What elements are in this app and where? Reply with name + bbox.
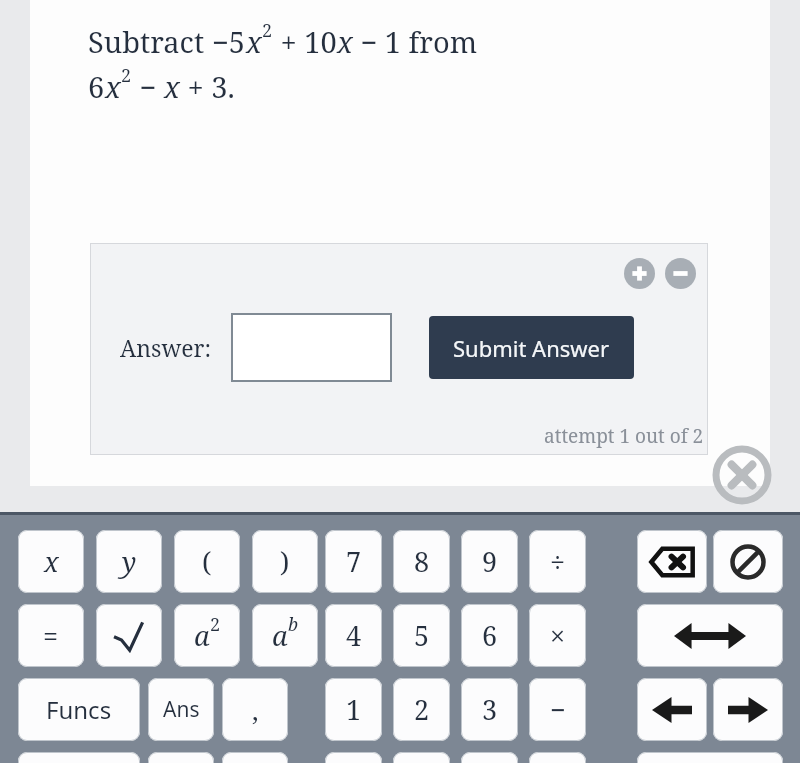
button[interactable]: × (529, 604, 586, 667)
staticText: 6 (88, 67, 105, 106)
button[interactable] (222, 752, 288, 763)
button[interactable]: ( (174, 530, 240, 593)
staticText: = (43, 617, 59, 654)
staticText: ( (202, 543, 212, 580)
staticText: − 1 from (353, 22, 478, 61)
staticText: 2 (210, 612, 221, 637)
button[interactable]: 3 (461, 678, 518, 741)
button[interactable]: Backspace (637, 530, 707, 593)
button[interactable]: 4 (325, 604, 382, 667)
staticText: + 10 (273, 22, 337, 61)
staticText: b (288, 612, 299, 637)
button[interactable] (461, 752, 518, 763)
button[interactable]: a (252, 604, 318, 667)
button[interactable]: 7 (325, 530, 382, 593)
button[interactable]: 9 (461, 530, 518, 593)
staticText: 2 (262, 18, 273, 43)
button[interactable] (231, 313, 392, 382)
staticText: x (337, 22, 353, 61)
button[interactable]: Funcs (18, 678, 140, 741)
button[interactable]: Zoom out (665, 258, 696, 289)
staticText: − (550, 691, 566, 728)
staticText: Answer: (120, 332, 211, 363)
button[interactable]: 1 (325, 678, 382, 741)
button[interactable] (393, 752, 450, 763)
staticText: ÷ (550, 543, 566, 580)
button[interactable]: 5 (393, 604, 450, 667)
staticText: Funcs (46, 693, 112, 726)
button[interactable]: y (96, 530, 162, 593)
staticText: x (105, 67, 121, 106)
staticText: x (246, 22, 262, 61)
staticText: 6 (482, 617, 498, 654)
button[interactable]: ÷ (529, 530, 586, 593)
staticText: a (272, 617, 288, 654)
staticText: 7 (346, 543, 362, 580)
button[interactable]: ) (252, 530, 318, 593)
staticText: 3 (482, 691, 498, 728)
button[interactable] (637, 752, 783, 763)
button[interactable] (325, 752, 382, 763)
button[interactable]: − (529, 678, 586, 741)
button[interactable]: Left (637, 678, 707, 741)
button[interactable]: a (174, 604, 240, 667)
button[interactable]: Zoom in (624, 258, 655, 289)
staticText: −5 (212, 22, 246, 61)
staticText: 1 (346, 691, 362, 728)
staticText: , (252, 692, 259, 727)
staticText: Submit Answer (453, 333, 610, 363)
button[interactable]: , (222, 678, 288, 741)
staticText: x (44, 543, 59, 580)
staticText: a (194, 617, 210, 654)
staticText: Ans (163, 695, 200, 724)
button[interactable] (18, 752, 140, 763)
staticText: y (122, 543, 137, 580)
staticText: 2 (414, 691, 430, 728)
button[interactable]: 6 (461, 604, 518, 667)
button[interactable]: 8 (393, 530, 450, 593)
button[interactable]: Move cursor (637, 604, 783, 667)
button[interactable]: Close (714, 447, 770, 503)
button[interactable]: Ans (148, 678, 214, 741)
button[interactable] (148, 752, 214, 763)
button[interactable]: 2 (393, 678, 450, 741)
staticText: 4 (346, 617, 362, 654)
staticText: − (132, 67, 164, 106)
staticText: x (164, 67, 180, 106)
button[interactable]: Square root (96, 604, 162, 667)
button[interactable]: x (18, 530, 84, 593)
staticText: 9 (482, 543, 498, 580)
staticText: ) (280, 543, 290, 580)
staticText: + 3. (180, 67, 235, 106)
staticText: × (550, 617, 566, 654)
staticText: Subtract (88, 22, 212, 61)
staticText: 8 (414, 543, 430, 580)
staticText: 5 (414, 617, 430, 654)
staticText: attempt 1 out of 2 (544, 423, 704, 449)
button[interactable]: Submit Answer (429, 316, 634, 379)
button[interactable] (529, 752, 586, 763)
staticText: 2 (121, 63, 132, 88)
button[interactable]: Right (713, 678, 783, 741)
button[interactable]: = (18, 604, 84, 667)
button[interactable]: Clear (713, 530, 783, 593)
